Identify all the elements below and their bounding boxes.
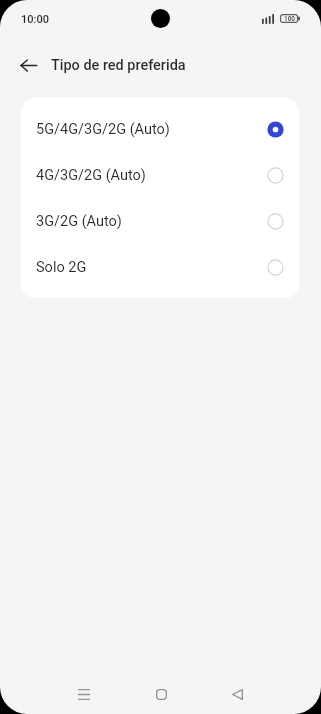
- staticText: 10:00: [21, 13, 49, 26]
- button[interactable]: Back: [216, 672, 260, 714]
- button[interactable]: Recents: [62, 672, 106, 714]
- staticText: Tipo de red preferida: [51, 57, 186, 74]
- staticText: 3G/2G (Auto): [36, 213, 122, 230]
- button[interactable]: Back: [11, 48, 45, 82]
- button[interactable]: Solo 2G: [21, 244, 299, 290]
- staticText: 100: [284, 15, 295, 23]
- staticText: 5G/4G/3G/2G (Auto): [36, 121, 170, 138]
- staticText: 4G/3G/2G (Auto): [36, 167, 146, 184]
- button[interactable]: 4G/3G/2G (Auto): [21, 152, 299, 198]
- button[interactable]: Home: [139, 672, 183, 714]
- button[interactable]: 5G/4G/3G/2G (Auto): [21, 106, 299, 152]
- button[interactable]: 3G/2G (Auto): [21, 198, 299, 244]
- staticText: Solo 2G: [36, 259, 87, 276]
